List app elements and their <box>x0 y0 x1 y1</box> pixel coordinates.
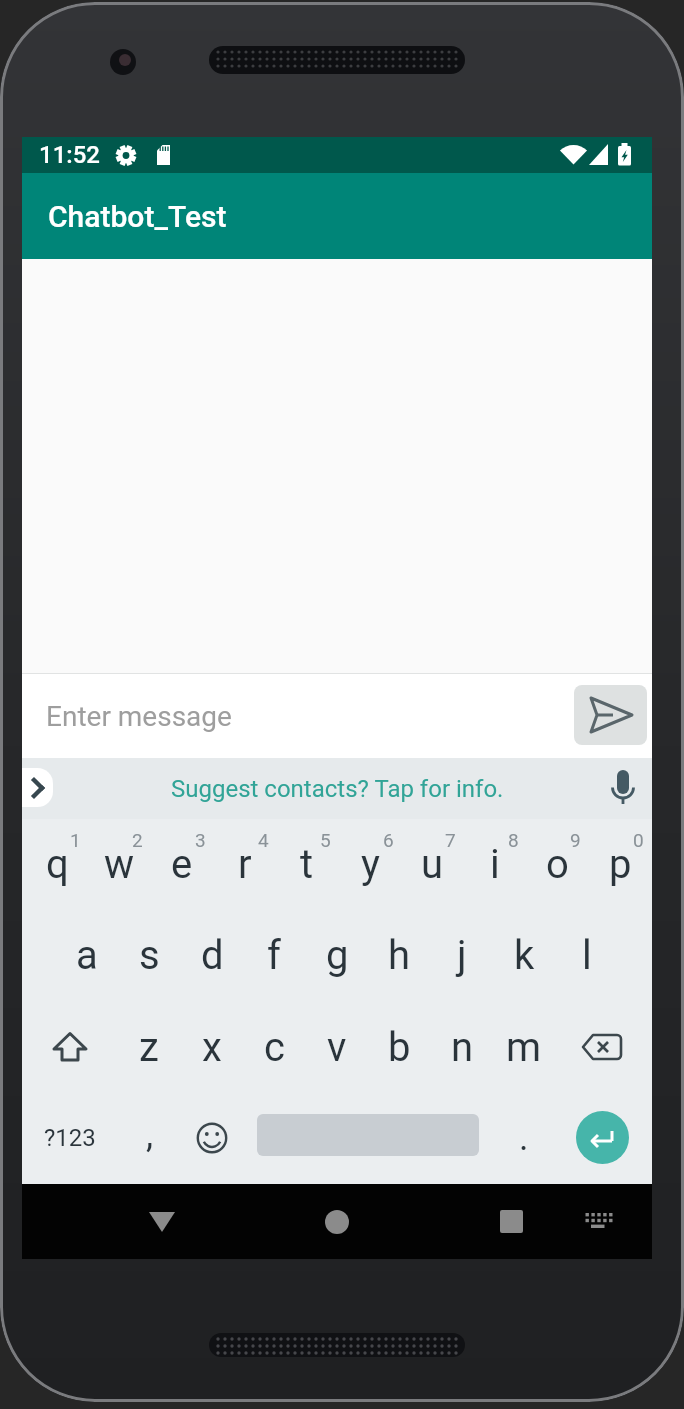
button[interactable]: z <box>118 1002 180 1093</box>
staticText: 8 <box>508 829 519 851</box>
staticText: 11:52 <box>39 141 100 169</box>
staticText: x <box>202 1024 222 1071</box>
button[interactable] <box>481 1191 542 1252</box>
staticText: 4 <box>258 829 269 851</box>
staticText: z <box>139 1024 159 1071</box>
staticText: r <box>238 841 252 888</box>
button[interactable]: t <box>276 819 338 910</box>
button[interactable]: a <box>56 910 118 1001</box>
staticText: e <box>171 841 193 888</box>
staticText: b <box>388 1024 411 1071</box>
button[interactable] <box>39 1016 101 1078</box>
button[interactable]: Suggest contacts? Tap for info. <box>171 775 504 803</box>
staticText: t <box>300 841 314 888</box>
staticText: . <box>519 1117 529 1159</box>
staticText: ?123 <box>44 1124 96 1152</box>
staticText: 2 <box>132 829 143 851</box>
button[interactable]: o <box>526 819 588 910</box>
button[interactable]: j <box>431 910 493 1001</box>
staticText: m <box>506 1024 542 1071</box>
staticText: Chatbot_Test <box>48 199 227 234</box>
staticText: 0 <box>633 829 644 851</box>
staticText: y <box>361 841 380 888</box>
staticText: Enter message <box>46 700 232 733</box>
staticText: l <box>582 932 592 979</box>
staticText: 7 <box>445 829 456 851</box>
staticText: n <box>451 1024 474 1071</box>
button[interactable]: c <box>243 1002 305 1093</box>
button[interactable]: v <box>306 1002 368 1093</box>
staticText: 6 <box>383 829 394 851</box>
button[interactable] <box>306 1191 367 1252</box>
staticText: 9 <box>570 829 581 851</box>
button[interactable]: r <box>214 819 276 910</box>
staticText: w <box>104 841 135 888</box>
staticText: , <box>146 1114 154 1156</box>
button[interactable]: m <box>493 1002 555 1093</box>
button[interactable]: k <box>493 910 555 1001</box>
staticText: v <box>327 1024 347 1071</box>
button[interactable] <box>574 685 647 745</box>
button[interactable]: s <box>118 910 180 1001</box>
button[interactable]: b <box>368 1002 430 1093</box>
button[interactable]: h <box>368 910 430 1001</box>
staticText: o <box>546 841 569 888</box>
staticText: k <box>514 932 535 979</box>
staticText: h <box>388 932 411 979</box>
staticText: a <box>76 932 98 979</box>
button[interactable]: g <box>306 910 368 1001</box>
staticText: g <box>326 932 349 979</box>
button[interactable] <box>131 1191 192 1252</box>
button[interactable]: ?123 <box>39 1107 101 1169</box>
staticText: u <box>421 841 444 888</box>
button[interactable]: p <box>589 819 651 910</box>
staticText: Suggest contacts? Tap for info. <box>171 775 504 803</box>
button[interactable]: i <box>464 819 526 910</box>
staticText: d <box>201 932 224 979</box>
button[interactable]: l <box>556 910 618 1001</box>
button[interactable]: e <box>151 819 213 910</box>
button[interactable] <box>573 1196 623 1246</box>
staticText: 1 <box>70 829 81 851</box>
button[interactable]: x <box>181 1002 243 1093</box>
button[interactable]: y <box>339 819 401 910</box>
button[interactable]: f <box>243 910 305 1001</box>
button[interactable]: w <box>88 819 150 910</box>
staticText: 5 <box>320 829 331 851</box>
staticText: i <box>490 841 500 888</box>
button[interactable] <box>571 1016 633 1078</box>
button[interactable]: d <box>181 910 243 1001</box>
button[interactable] <box>576 1111 629 1164</box>
staticText: c <box>264 1024 285 1071</box>
button[interactable]: . <box>493 1107 555 1169</box>
staticText: f <box>267 932 281 979</box>
button[interactable] <box>601 765 645 811</box>
button[interactable]: , <box>119 1107 181 1169</box>
button[interactable]: u <box>401 819 463 910</box>
staticText: j <box>457 932 467 979</box>
button[interactable] <box>22 768 53 807</box>
button[interactable] <box>181 1107 243 1169</box>
staticText: p <box>609 841 632 888</box>
button[interactable]: n <box>431 1002 493 1093</box>
staticText: s <box>139 932 160 979</box>
staticText: 3 <box>195 829 206 851</box>
staticText: q <box>46 841 69 888</box>
button[interactable]: q <box>26 819 88 910</box>
